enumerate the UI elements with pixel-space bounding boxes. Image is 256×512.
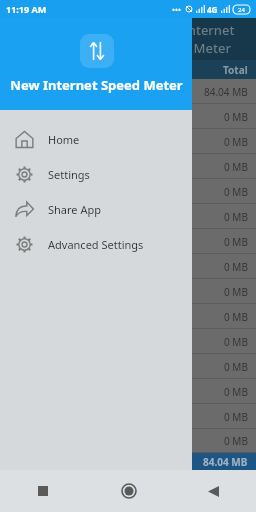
staticText: 24 bbox=[238, 6, 245, 14]
button[interactable]: 0 MB bbox=[0, 379, 256, 404]
staticText: 0 MB bbox=[224, 310, 248, 324]
button[interactable]: Back bbox=[171, 470, 256, 512]
staticText: 0 MB bbox=[224, 335, 248, 349]
button[interactable]: 0 MB bbox=[0, 104, 256, 129]
staticText: Settings bbox=[48, 167, 90, 182]
button[interactable]: 0 MB bbox=[0, 154, 256, 179]
button[interactable]: Home bbox=[86, 470, 171, 512]
staticText: 84.04 MB bbox=[203, 455, 248, 469]
staticText: 11:19 AM bbox=[6, 3, 47, 15]
button[interactable]: 0 MB bbox=[0, 204, 256, 229]
button[interactable]: 84.04 MB bbox=[0, 79, 256, 104]
staticText: 84.04 MB bbox=[204, 85, 248, 99]
staticText: 0 MB bbox=[224, 260, 248, 274]
staticText: Share App bbox=[48, 202, 101, 217]
button[interactable]: Recent apps bbox=[0, 470, 86, 512]
button[interactable]: Settings bbox=[0, 157, 192, 192]
staticText: 0 MB bbox=[224, 160, 248, 174]
staticText: 4G bbox=[207, 4, 218, 15]
staticText: 0 MB bbox=[224, 434, 248, 448]
staticText: 0 MB bbox=[224, 185, 248, 199]
button[interactable]: 0 MB bbox=[0, 429, 256, 453]
staticText: New Internet Speed Meter bbox=[152, 21, 256, 57]
staticText: 0 MB bbox=[224, 235, 248, 249]
button[interactable]: Share App bbox=[0, 192, 192, 227]
staticText: 0 MB bbox=[224, 135, 248, 149]
staticText: 0 MB bbox=[224, 410, 248, 424]
staticText: New Internet Speed Meter bbox=[10, 76, 183, 94]
staticText: 0 MB bbox=[224, 110, 248, 124]
button[interactable]: 0 MB bbox=[0, 329, 256, 354]
button[interactable]: 0 MB bbox=[0, 279, 256, 304]
button[interactable]: 0 MB bbox=[0, 254, 256, 279]
button[interactable]: Home bbox=[0, 122, 192, 157]
staticText: 0 MB bbox=[224, 385, 248, 399]
button[interactable]: 0 MB bbox=[0, 129, 256, 154]
button[interactable]: 0 MB bbox=[0, 404, 256, 429]
staticText: 0 MB bbox=[224, 360, 248, 374]
staticText: Total bbox=[223, 63, 248, 77]
button[interactable]: Advanced Settings bbox=[0, 227, 192, 262]
button[interactable]: 0 MB bbox=[0, 304, 256, 329]
staticText: 0 MB bbox=[224, 285, 248, 299]
button[interactable]: 0 MB bbox=[0, 179, 256, 204]
staticText: 0 MB bbox=[224, 210, 248, 224]
staticText: Home bbox=[48, 132, 80, 147]
staticText: ••• bbox=[172, 4, 182, 15]
button[interactable]: 84.04 MB bbox=[0, 453, 256, 470]
staticText: Advanced Settings bbox=[48, 237, 144, 252]
button[interactable]: 0 MB bbox=[0, 229, 256, 254]
button[interactable]: 0 MB bbox=[0, 354, 256, 379]
